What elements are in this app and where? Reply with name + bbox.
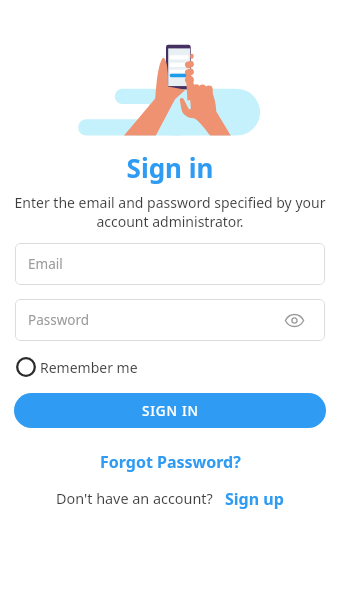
button[interactable]: Forgot Password?	[100, 451, 241, 473]
staticText: Don't have an account?	[56, 489, 213, 509]
staticText: Email	[28, 255, 63, 273]
button[interactable]: Email	[15, 243, 325, 285]
button[interactable]: Sign up	[225, 488, 284, 510]
button[interactable]: Password	[15, 299, 325, 341]
button[interactable]: SIGN IN	[14, 393, 326, 428]
staticText: Sign in	[0, 150, 340, 185]
staticText: Enter the email and password specified b…	[12, 193, 328, 231]
staticText: SIGN IN	[142, 402, 199, 420]
staticText: Password	[28, 311, 90, 329]
staticText: Remember me	[40, 358, 138, 377]
button[interactable]: Show password	[281, 307, 307, 333]
button[interactable]: Remember me	[16, 357, 138, 377]
